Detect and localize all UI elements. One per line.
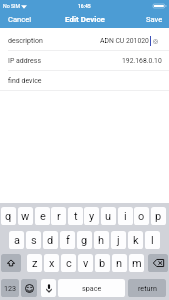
button[interactable]: i	[118, 207, 133, 225]
staticText: k	[133, 234, 139, 247]
staticText: g	[81, 234, 88, 247]
staticText: f	[66, 234, 70, 247]
staticText: d	[47, 234, 54, 247]
button[interactable]: find device	[0, 71, 169, 90]
staticText: n	[116, 257, 123, 270]
staticText: Edit Device	[65, 15, 105, 24]
staticText: return	[138, 284, 157, 292]
button[interactable]: c	[61, 254, 76, 272]
button[interactable]: 123	[1, 279, 19, 297]
staticText: 123	[4, 284, 17, 292]
button[interactable]: IP address	[0, 51, 169, 70]
staticText: h	[98, 234, 105, 247]
button[interactable]: j	[111, 231, 126, 249]
staticText: 192.168.0.10	[122, 57, 162, 65]
button[interactable]: e	[35, 207, 50, 225]
staticText: s	[31, 234, 37, 247]
staticText: Cancel	[8, 15, 32, 24]
button[interactable]: x	[44, 254, 59, 272]
button[interactable]: z	[27, 254, 42, 272]
staticText: IP address	[8, 57, 42, 65]
button[interactable]: Dictation	[41, 279, 56, 297]
staticText: m	[132, 257, 142, 270]
staticText: y	[89, 210, 95, 223]
staticText: o	[138, 210, 145, 223]
button[interactable]: Shift	[1, 254, 21, 272]
button[interactable]: b	[95, 254, 110, 272]
staticText: j	[117, 234, 120, 247]
staticText: l	[151, 234, 154, 247]
staticText: q	[5, 210, 12, 223]
button[interactable]: space	[58, 279, 125, 297]
staticText: find device	[8, 77, 42, 85]
button[interactable]: l	[145, 231, 160, 249]
staticText: No SIM	[3, 3, 20, 9]
staticText: c	[66, 257, 72, 270]
staticText: e	[40, 210, 46, 223]
staticText: z	[32, 257, 38, 270]
staticText: p	[155, 210, 162, 223]
staticText: t	[74, 210, 78, 223]
button[interactable]: Cancel	[0, 11, 38, 28]
button[interactable]: Save	[140, 11, 169, 28]
button[interactable]: f	[60, 231, 75, 249]
button[interactable]: q	[1, 207, 16, 225]
button[interactable]: y	[84, 207, 99, 225]
staticText: Save	[146, 15, 163, 24]
button[interactable]: n	[112, 254, 127, 272]
button[interactable]: r	[51, 207, 66, 225]
staticText: u	[105, 210, 112, 223]
button[interactable]: t	[68, 207, 83, 225]
button[interactable]: return	[128, 279, 166, 297]
staticText: x	[49, 257, 55, 270]
button[interactable]: s	[26, 231, 41, 249]
button[interactable]: d	[43, 231, 58, 249]
staticText: 16:45	[78, 3, 91, 9]
staticText: description	[8, 37, 43, 45]
staticText: v	[83, 257, 89, 270]
staticText: i	[124, 210, 127, 223]
button[interactable]: a	[9, 231, 24, 249]
button[interactable]: u	[101, 207, 116, 225]
staticText: w	[21, 210, 30, 223]
staticText: a	[14, 234, 20, 247]
staticText: ADN CU 201020	[100, 37, 149, 45]
button[interactable]: w	[18, 207, 33, 225]
button[interactable]: h	[94, 231, 109, 249]
button[interactable]: Backspace	[148, 254, 168, 272]
button[interactable]: m	[129, 254, 144, 272]
staticText: b	[99, 257, 106, 270]
button[interactable]: g	[77, 231, 92, 249]
staticText: r	[57, 210, 61, 223]
button[interactable]: v	[78, 254, 93, 272]
button[interactable]: k	[128, 231, 143, 249]
button[interactable]: p	[151, 207, 166, 225]
button[interactable]: description	[0, 31, 169, 50]
button[interactable]: Emoji	[21, 279, 37, 297]
staticText: space	[82, 284, 102, 292]
button[interactable]: Clear text	[153, 39, 158, 44]
button[interactable]: o	[134, 207, 149, 225]
